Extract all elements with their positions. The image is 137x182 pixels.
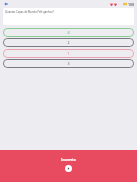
staticText: Quantas Copas do Mundo Pelé ganhou? [5,10,54,14]
button[interactable]: Next question [65,165,72,172]
button[interactable]: 4 [3,28,134,37]
button[interactable]: 3 [3,59,134,68]
button[interactable]: 1 [3,49,134,58]
staticText: 4 [67,30,70,35]
staticText: 100 [128,2,135,7]
staticText: 1 [67,51,70,56]
button[interactable]: 2 [3,38,134,47]
staticText: 3 [67,61,70,66]
staticText: Incorreto [61,158,76,162]
staticText: 2 [67,40,70,45]
button[interactable]: Back [3,1,9,7]
